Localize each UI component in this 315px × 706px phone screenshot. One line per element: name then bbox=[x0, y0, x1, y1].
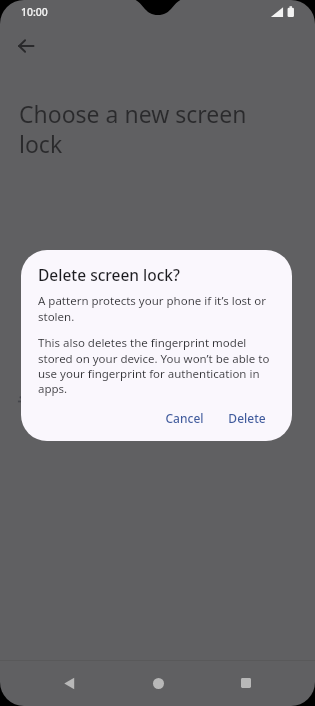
button[interactable]: Recent apps bbox=[226, 663, 266, 703]
button[interactable]: Cancel bbox=[156, 405, 213, 431]
staticText: This also deletes the fingerprint model … bbox=[38, 335, 275, 396]
button[interactable]: Back bbox=[10, 30, 42, 62]
staticText: Delete bbox=[228, 410, 266, 426]
staticText: Cancel bbox=[165, 410, 204, 426]
staticText: 10:00 bbox=[21, 5, 48, 19]
button[interactable]: Delete bbox=[219, 405, 275, 431]
button[interactable]: Back bbox=[49, 663, 89, 703]
staticText: Choose a new screen lock bbox=[19, 98, 247, 159]
staticText: Delete screen lock? bbox=[38, 264, 180, 285]
staticText: Password bbox=[55, 390, 119, 409]
button[interactable]: Password bbox=[0, 375, 315, 423]
button[interactable]: Home bbox=[138, 663, 178, 703]
staticText: A pattern protects your phone if it’s lo… bbox=[38, 293, 275, 324]
